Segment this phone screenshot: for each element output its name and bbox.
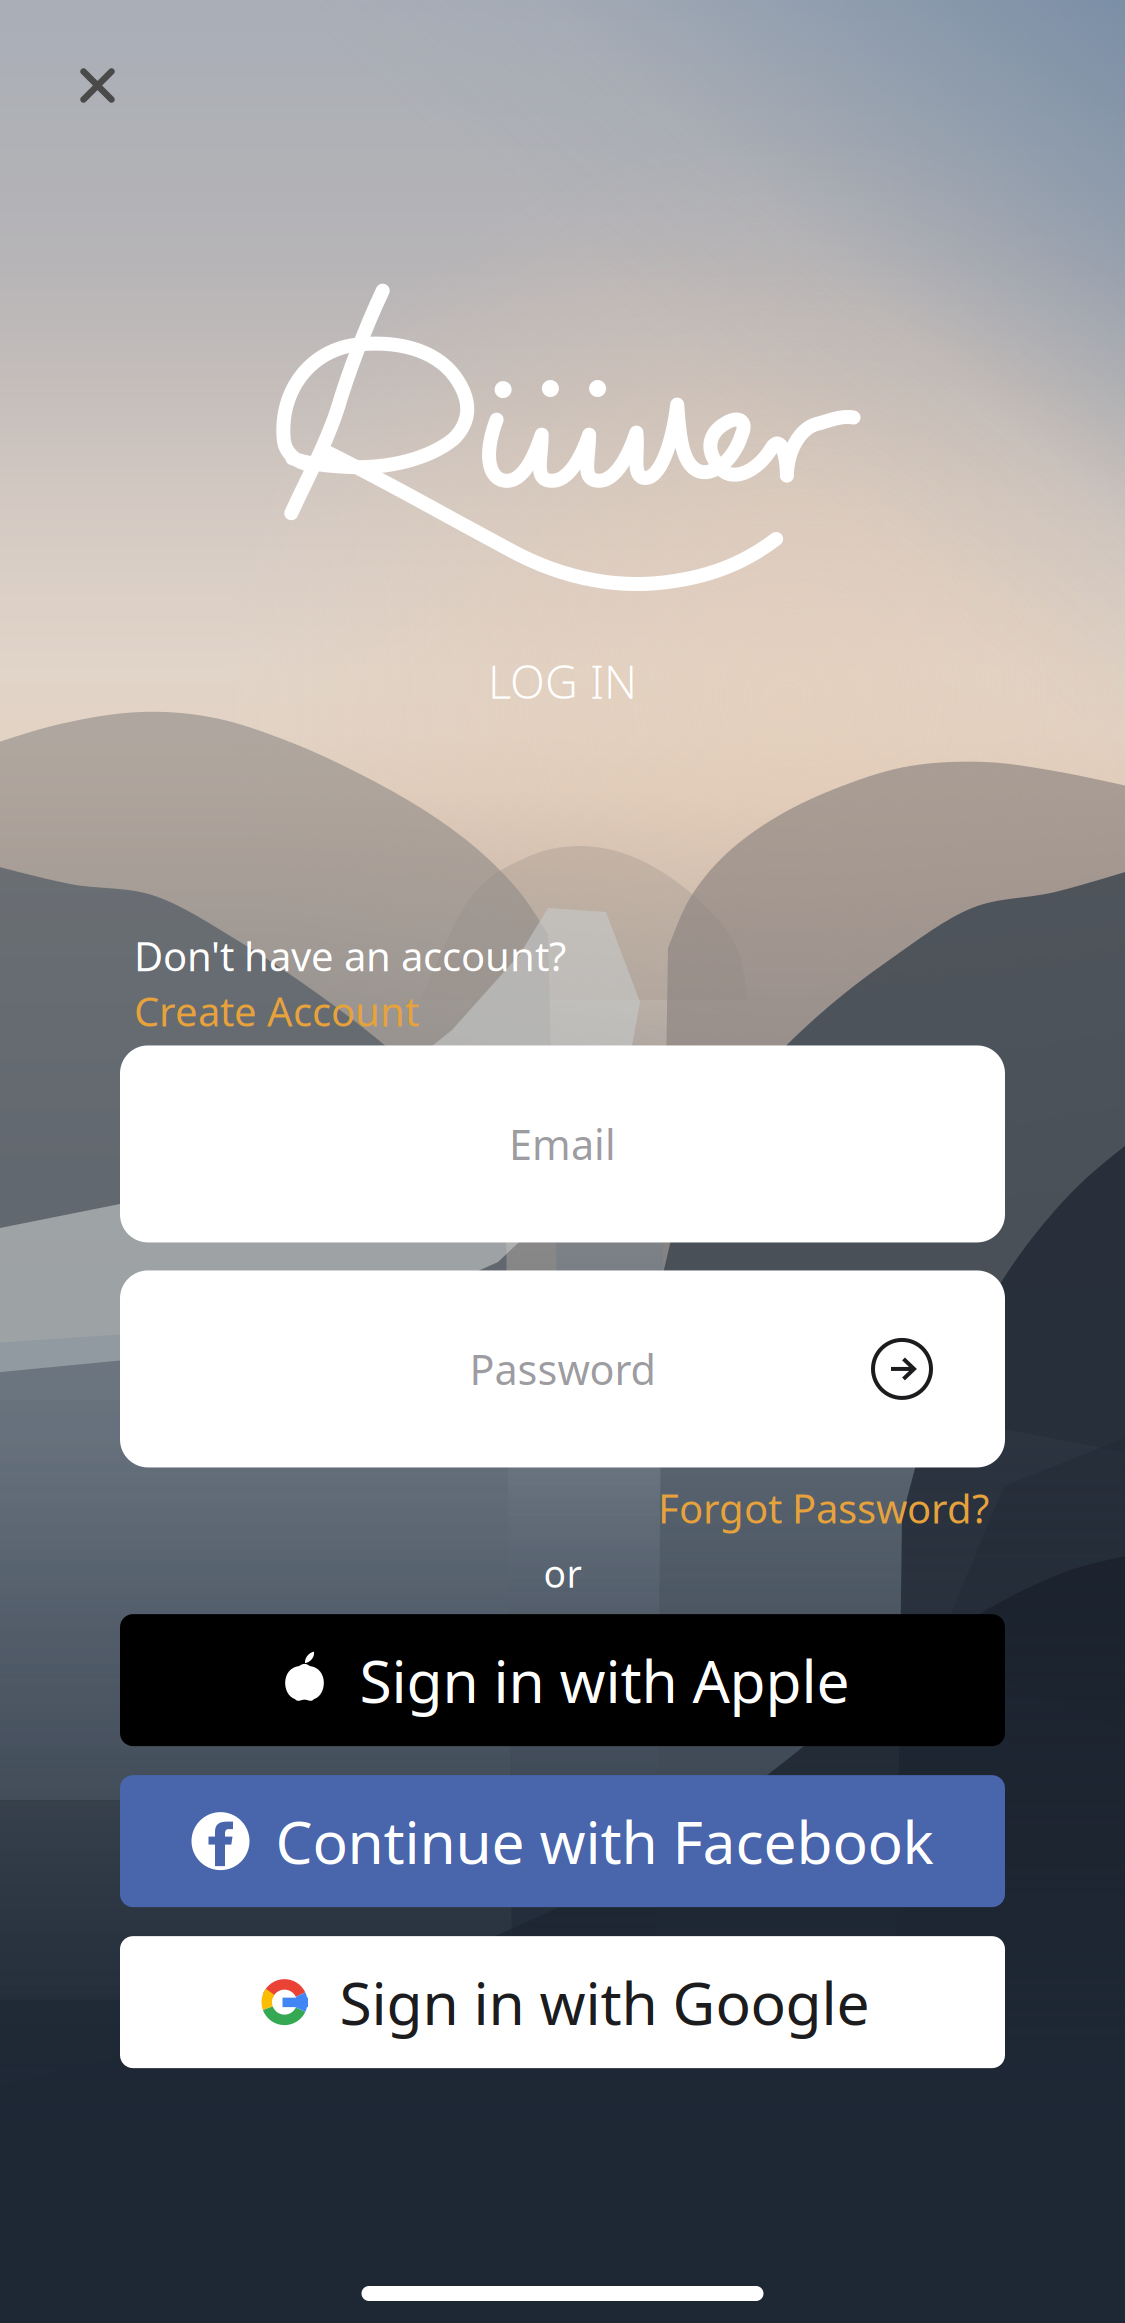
staticText: Forgot Password? bbox=[658, 1481, 989, 1534]
staticText: Don't have an account? bbox=[134, 929, 566, 982]
button[interactable]: Sign in with Apple bbox=[120, 1614, 1005, 1746]
button[interactable]: Email bbox=[120, 1045, 1005, 1242]
staticText: Continue with Facebook bbox=[275, 1802, 933, 1880]
button[interactable]: Close bbox=[47, 34, 147, 134]
button[interactable]: Create Account bbox=[134, 984, 1019, 1037]
staticText: LOG IN bbox=[488, 651, 637, 711]
staticText: Sign in with Google bbox=[339, 1963, 869, 2041]
staticText: or bbox=[543, 1549, 581, 1598]
button[interactable]: Sign in with Google bbox=[120, 1936, 1005, 2068]
staticText: Sign in with Apple bbox=[359, 1641, 849, 1719]
button[interactable]: Continue with Facebook bbox=[120, 1775, 1005, 1907]
staticText: Create Account bbox=[134, 984, 419, 1037]
button[interactable]: Password bbox=[120, 1270, 1005, 1467]
staticText: Password bbox=[469, 1341, 655, 1396]
button[interactable]: Forgot Password? bbox=[658, 1481, 989, 1534]
staticText: Email bbox=[509, 1116, 616, 1171]
